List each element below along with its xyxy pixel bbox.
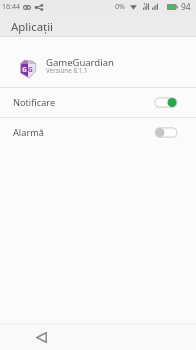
staticText: 94 bbox=[181, 1, 191, 13]
staticText: G bbox=[28, 65, 33, 74]
staticText: Versiune 8.1.1 bbox=[46, 66, 88, 75]
staticText: GameGuardian bbox=[46, 56, 114, 69]
staticText: Notificare bbox=[13, 96, 56, 109]
staticText: 0% bbox=[115, 2, 125, 12]
button[interactable]: Alarmă bbox=[0, 118, 196, 147]
staticText: 16:44 bbox=[2, 2, 20, 12]
button[interactable]: G bbox=[0, 37, 196, 87]
staticText: Alarmă bbox=[13, 126, 44, 139]
staticText: Aplicații bbox=[11, 19, 54, 35]
staticText: G bbox=[22, 65, 27, 74]
button[interactable]: Notificare bbox=[0, 88, 196, 117]
button[interactable]: Back bbox=[31, 327, 51, 347]
